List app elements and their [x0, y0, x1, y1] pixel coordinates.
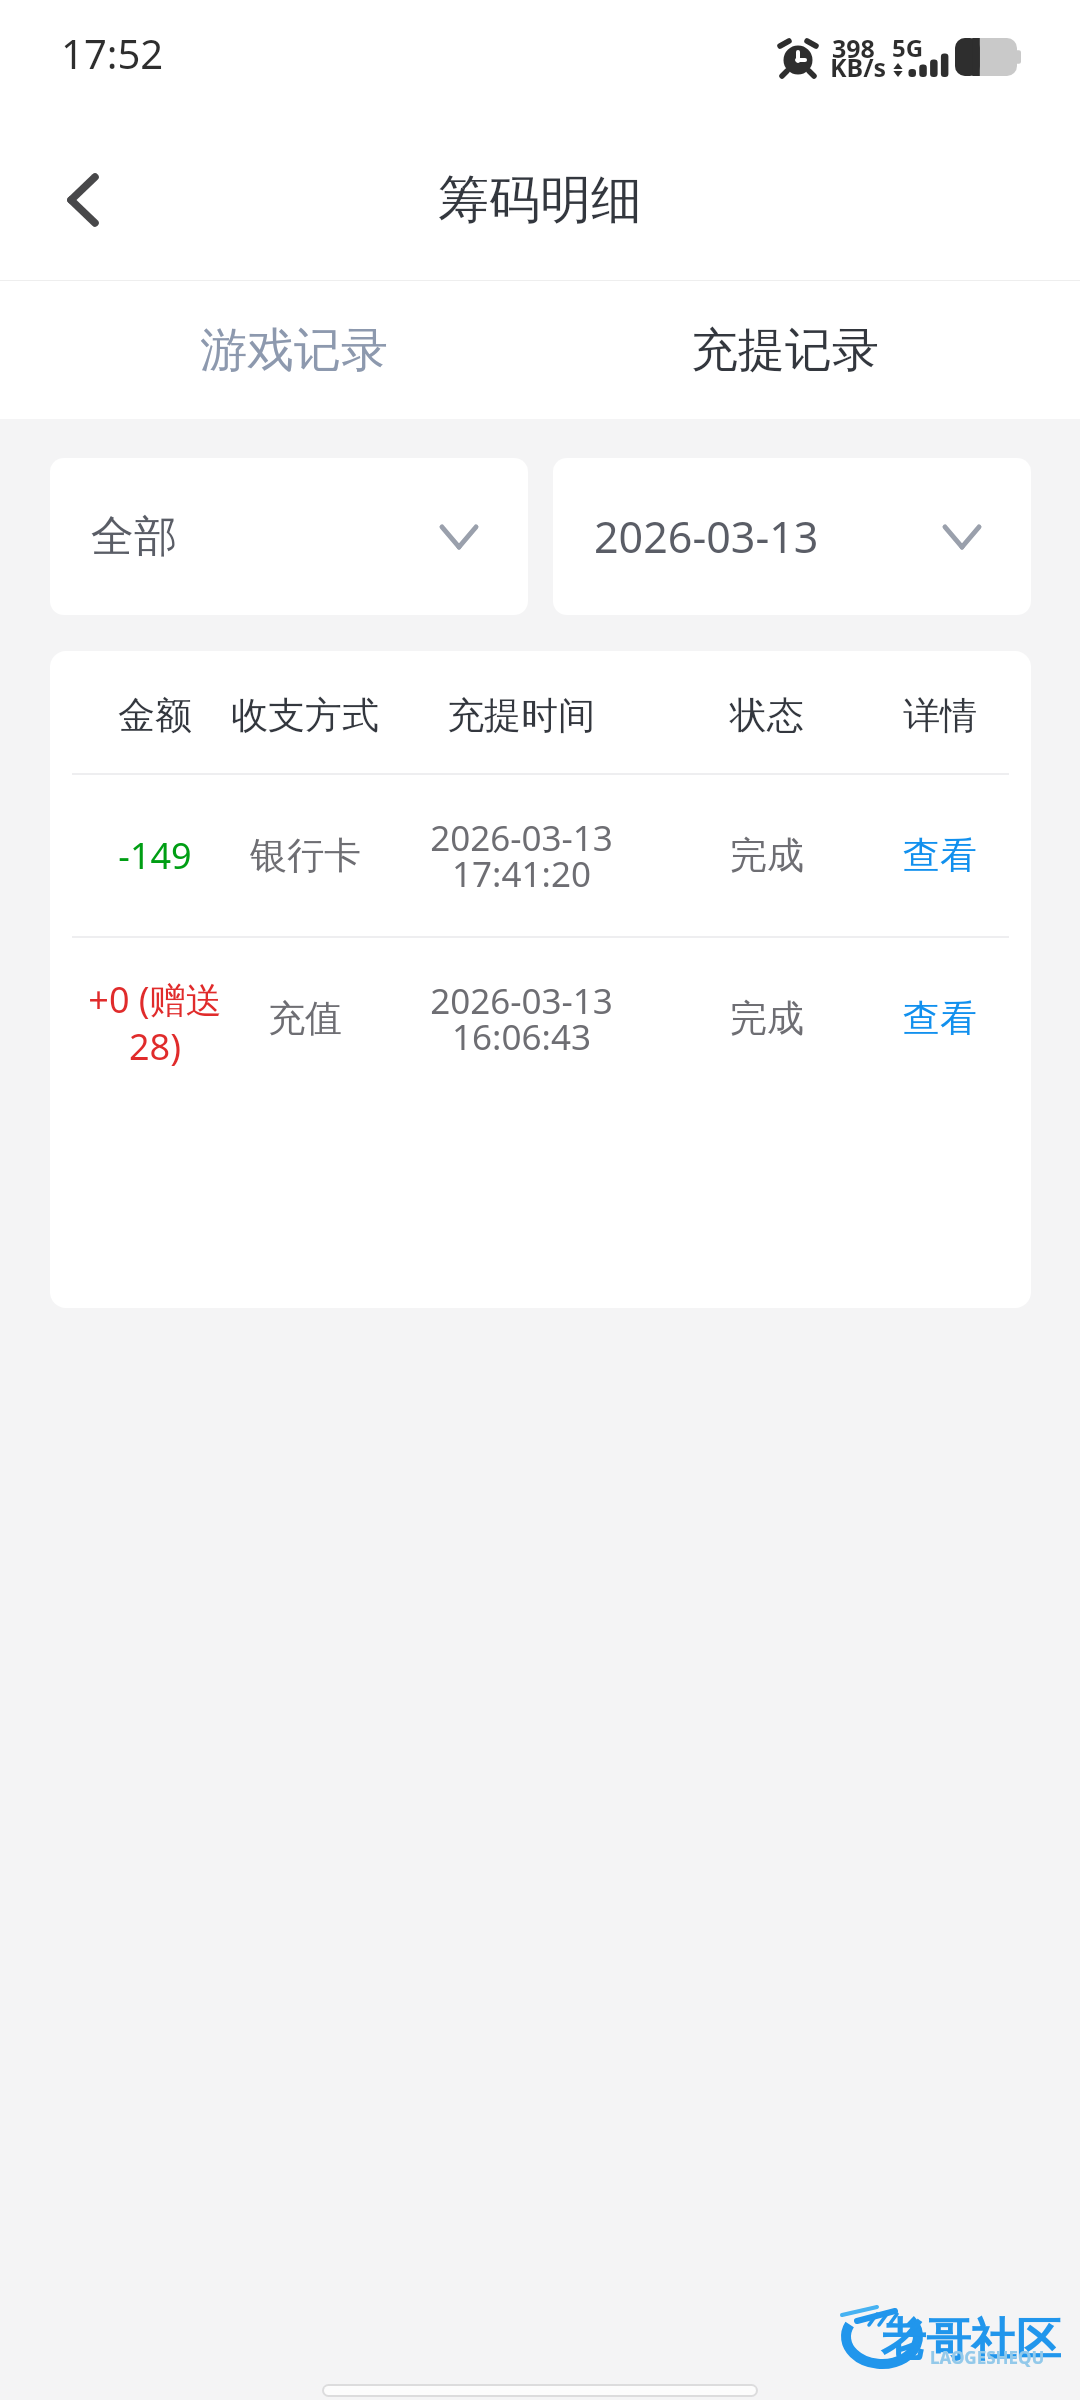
staticText: 5G — [892, 31, 924, 64]
staticText: 筹码明细 — [438, 168, 642, 232]
staticText: LAOGESHEQU — [930, 2346, 1045, 2369]
staticText: 完成 — [730, 832, 804, 879]
button[interactable]: 查看 — [889, 985, 991, 1052]
staticText: 充值 — [268, 995, 342, 1042]
button[interactable]: 查看 — [889, 822, 991, 889]
button[interactable]: Back — [33, 150, 133, 250]
button[interactable]: 充提记录 — [539, 281, 1030, 419]
staticText: +0 (赠送 28) — [88, 975, 222, 1070]
staticText: 状态 — [730, 692, 804, 739]
staticText: 详情 — [903, 692, 977, 739]
staticText: 2026-03-13 16:06:43 — [430, 977, 613, 1061]
staticText: 查看 — [903, 995, 977, 1042]
staticText: -149 — [118, 831, 192, 880]
button[interactable]: 2026-03-13 — [553, 458, 1031, 615]
staticText: 游戏记录 — [200, 321, 388, 380]
staticText: 2026-03-13 — [594, 507, 819, 566]
staticText: 老哥社区 — [881, 2312, 1061, 2369]
button[interactable]: +0 (赠送 28) — [50, 938, 1031, 1099]
button[interactable]: -149 — [50, 775, 1031, 936]
button[interactable]: 游戏记录 — [48, 281, 539, 419]
staticText: 收支方式 — [231, 692, 379, 739]
staticText: 17:52 — [61, 26, 164, 80]
staticText: 查看 — [903, 832, 977, 879]
staticText: 398 — [832, 31, 875, 65]
button[interactable]: 全部 — [50, 458, 528, 615]
staticText: 2026-03-13 17:41:20 — [430, 814, 613, 898]
staticText: 银行卡 — [250, 832, 361, 879]
staticText: 全部 — [91, 510, 177, 564]
staticText: 充提记录 — [691, 321, 879, 380]
staticText: 完成 — [730, 995, 804, 1042]
staticText: 金额 — [118, 692, 192, 739]
staticText: 充提时间 — [447, 692, 595, 739]
staticText: KB/s — [830, 50, 887, 84]
